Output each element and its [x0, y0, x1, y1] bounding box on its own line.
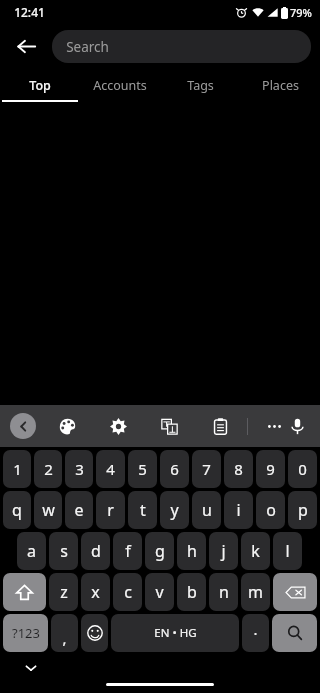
button[interactable]: Accounts [80, 68, 160, 102]
button[interactable]: 8 [224, 450, 253, 488]
button[interactable]: Themes [54, 413, 80, 439]
staticText: p [298, 499, 308, 521]
button[interactable]: h [177, 532, 206, 570]
staticText: Tags [187, 77, 214, 94]
button[interactable]: m [241, 573, 270, 611]
staticText: 12:41 [14, 4, 45, 20]
staticText: v [155, 581, 164, 603]
button[interactable]: n [209, 573, 238, 611]
staticText: h [187, 540, 197, 562]
button[interactable]: 7 [192, 450, 221, 488]
button[interactable]: k [241, 532, 270, 570]
button[interactable]: Backspace [273, 573, 317, 611]
staticText: l [285, 540, 290, 562]
button[interactable]: e [65, 491, 93, 529]
button[interactable]: b [177, 573, 206, 611]
staticText: s [60, 540, 68, 562]
button[interactable]: Back [10, 413, 36, 439]
staticText: 5 [138, 459, 147, 479]
button[interactable]: Hide keyboard [21, 658, 41, 678]
staticText: , [62, 628, 67, 648]
staticText: 1 [13, 459, 22, 479]
button[interactable]: j [209, 532, 238, 570]
button[interactable]: c [113, 573, 142, 611]
staticText: e [74, 499, 84, 521]
button[interactable]: Top [0, 68, 80, 102]
staticText: g [155, 540, 165, 562]
staticText: f [125, 540, 131, 562]
button[interactable]: p [288, 491, 317, 529]
button[interactable]: Tags [160, 68, 240, 102]
staticText: i [236, 499, 241, 521]
staticText: a [27, 540, 36, 562]
button[interactable]: z [49, 573, 78, 611]
staticText: 79% [290, 5, 312, 20]
staticText: 0 [298, 459, 307, 479]
button[interactable]: Search [272, 614, 317, 652]
button[interactable]: 6 [160, 450, 189, 488]
button[interactable]: 0 [288, 450, 317, 488]
button[interactable]: 2 [34, 450, 62, 488]
button[interactable]: u [192, 491, 221, 529]
button[interactable]: Voice input [287, 413, 308, 439]
staticText: b [187, 581, 197, 603]
button[interactable]: w [34, 491, 62, 529]
button[interactable]: , [51, 614, 78, 652]
staticText: 3 [75, 459, 84, 479]
staticText: m [248, 581, 263, 603]
button[interactable]: Places [240, 68, 320, 102]
button[interactable]: o [256, 491, 285, 529]
button[interactable]: x [81, 573, 110, 611]
button[interactable]: v [145, 573, 174, 611]
staticText: Accounts [93, 77, 147, 94]
staticText: t [140, 499, 146, 521]
button[interactable]: Search [52, 30, 311, 63]
staticText: 8 [234, 459, 243, 479]
staticText: j [221, 540, 226, 562]
staticText: d [91, 540, 101, 562]
button[interactable]: Emoji [81, 614, 108, 652]
button[interactable]: Back [0, 24, 52, 68]
staticText: 4 [106, 459, 115, 479]
button[interactable]: d [81, 532, 110, 570]
staticText: 6 [170, 459, 179, 479]
button[interactable]: More options [261, 413, 287, 439]
button[interactable]: . [242, 614, 269, 652]
button[interactable]: i [224, 491, 253, 529]
staticText: 7 [202, 459, 211, 479]
staticText: r [107, 499, 114, 521]
staticText: z [60, 581, 68, 603]
staticText: Top [29, 77, 51, 94]
button[interactable]: 3 [65, 450, 93, 488]
staticText: ?123 [12, 624, 40, 642]
button[interactable]: EN • HG [111, 614, 239, 652]
button[interactable]: y [160, 491, 189, 529]
staticText: x [91, 581, 100, 603]
button[interactable]: 1 [3, 450, 31, 488]
staticText: c [124, 581, 132, 603]
button[interactable]: s [49, 532, 78, 570]
button[interactable]: 9 [256, 450, 285, 488]
button[interactable]: Shift [3, 573, 46, 611]
staticText: . [253, 619, 258, 639]
button[interactable]: 4 [96, 450, 125, 488]
button[interactable]: l [273, 532, 302, 570]
staticText: n [219, 581, 229, 603]
button[interactable]: q [3, 491, 31, 529]
staticText: Search [66, 38, 109, 56]
staticText: q [12, 499, 22, 521]
button[interactable]: a [17, 532, 46, 570]
button[interactable]: Clipboard [207, 413, 233, 439]
staticText: k [251, 540, 260, 562]
button[interactable]: Settings [105, 413, 131, 439]
button[interactable]: g [145, 532, 174, 570]
staticText: o [266, 499, 276, 521]
button[interactable]: ?123 [3, 614, 48, 652]
button[interactable]: t [128, 491, 157, 529]
button[interactable]: r [96, 491, 125, 529]
staticText: u [202, 499, 212, 521]
staticText: 2 [44, 459, 53, 479]
button[interactable]: Translate [156, 413, 182, 439]
button[interactable]: 5 [128, 450, 157, 488]
button[interactable]: f [113, 532, 142, 570]
